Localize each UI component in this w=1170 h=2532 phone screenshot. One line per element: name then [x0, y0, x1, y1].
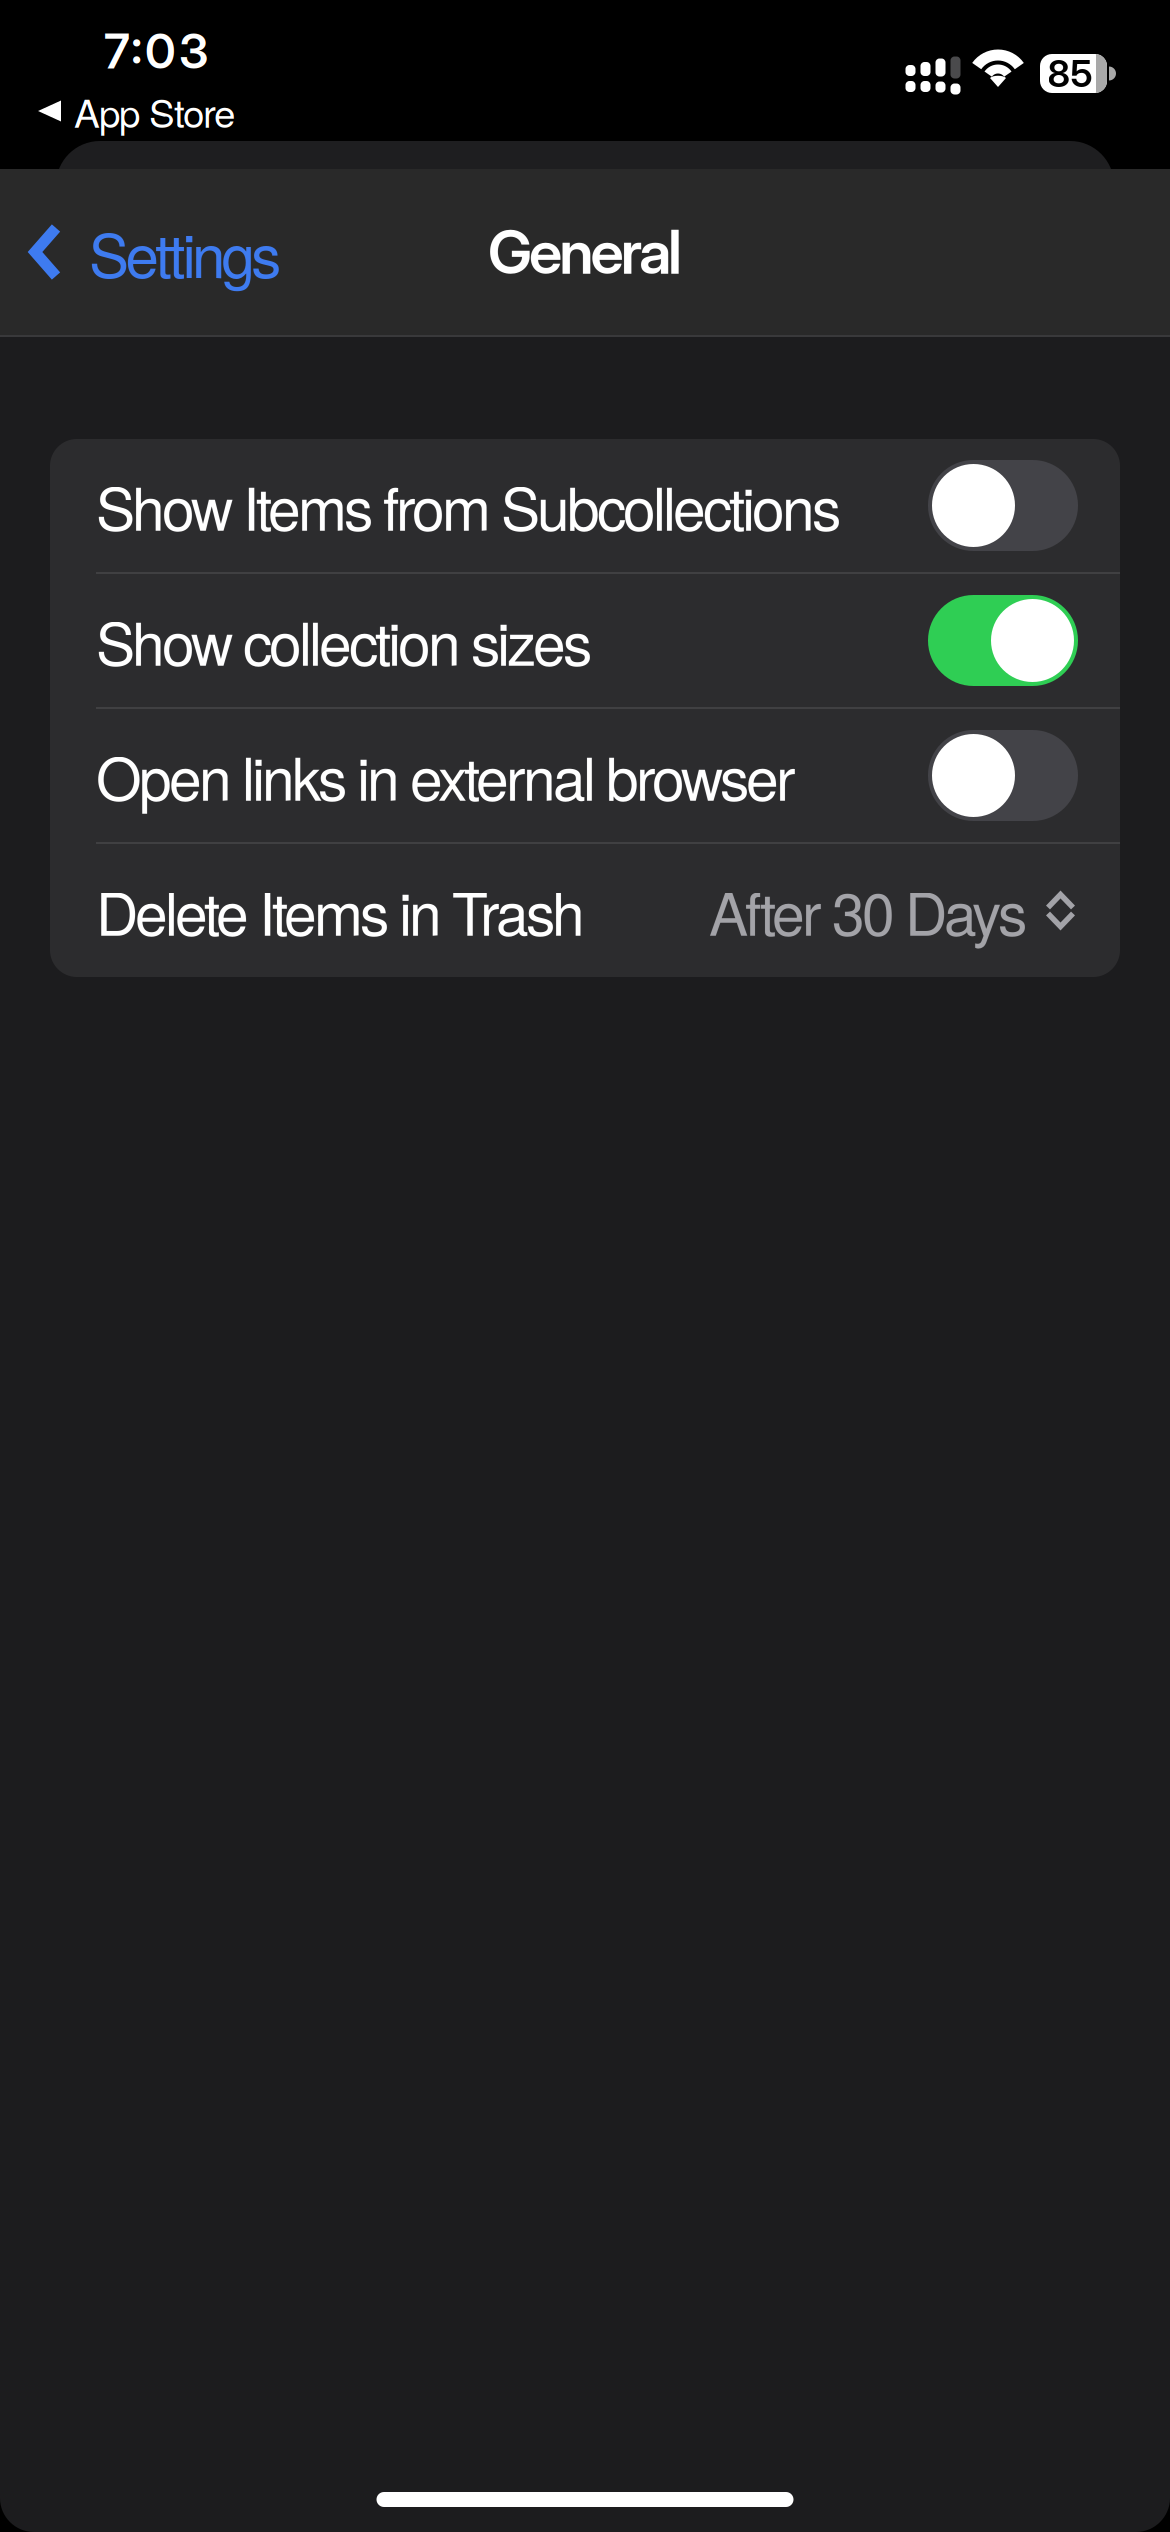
staticText: Show Items from Subcollections	[96, 463, 841, 547]
button[interactable]: Show Items from Subcollections	[50, 439, 1120, 572]
staticText: Delete Items in Trash	[96, 868, 585, 952]
button[interactable]: Open links in external browser	[50, 709, 1120, 842]
button[interactable]: Back to App Store	[38, 91, 235, 131]
button[interactable]: Settings	[0, 185, 281, 319]
staticText: Settings	[89, 209, 281, 295]
staticText: Open links in external browser	[96, 733, 796, 817]
button[interactable]: Show collection sizes	[50, 574, 1120, 707]
staticText: General	[488, 216, 682, 288]
staticText: 7:03	[104, 22, 208, 80]
staticText: 85	[1047, 51, 1092, 96]
staticText: App Store	[74, 83, 235, 139]
button[interactable]: Delete Items in Trash	[50, 844, 1120, 977]
staticText: After 30 Days	[709, 868, 1027, 952]
staticText: Show collection sizes	[96, 598, 592, 682]
